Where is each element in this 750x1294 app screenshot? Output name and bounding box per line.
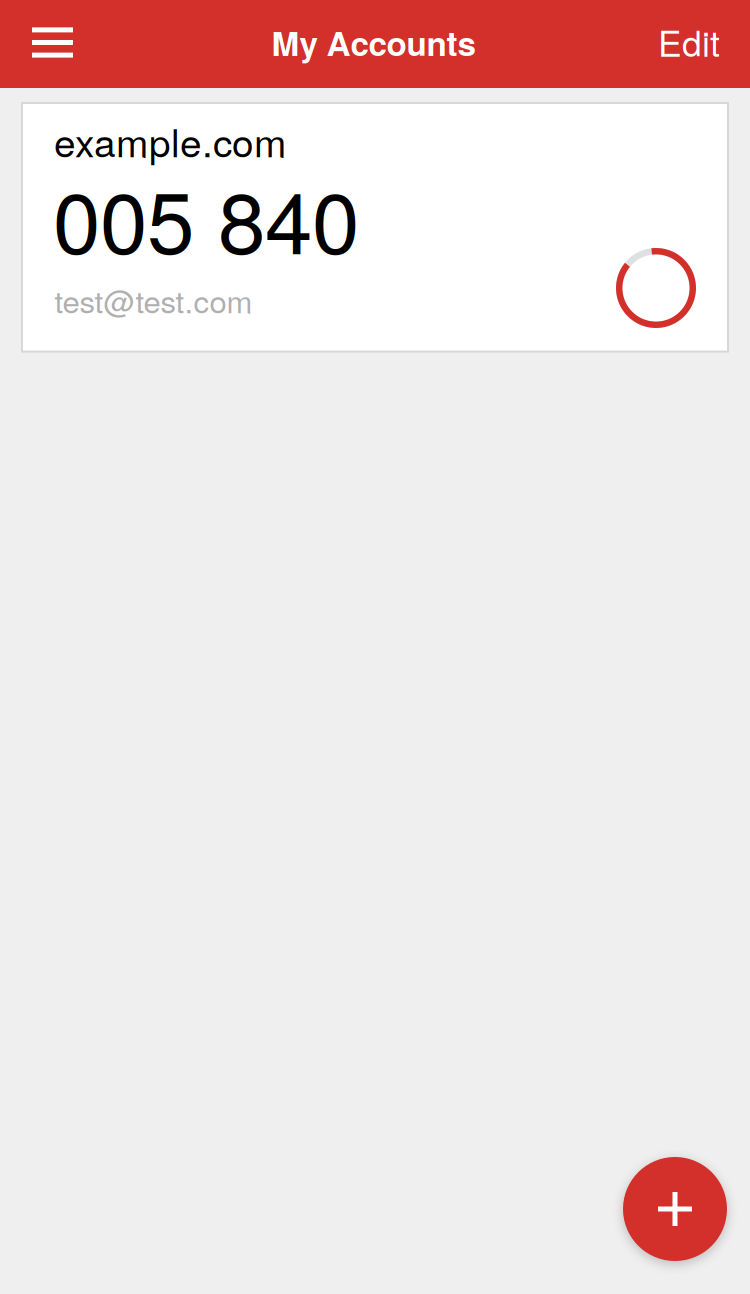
staticText: 005 840: [53, 156, 359, 279]
staticText: test@test.com: [55, 278, 253, 322]
button[interactable]: example.com: [22, 103, 728, 352]
staticText: Edit: [658, 16, 720, 67]
staticText: example.com: [54, 113, 286, 168]
button[interactable]: Edit: [658, 16, 720, 67]
button[interactable]: Add account: [623, 1157, 727, 1261]
button[interactable]: Menu: [16, 0, 89, 86]
staticText: My Accounts: [271, 18, 475, 66]
